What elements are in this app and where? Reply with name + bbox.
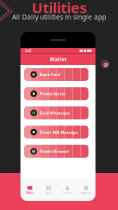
button[interactable]: Bank Card: [24, 68, 88, 81]
staticText: Utilities: [31, 0, 86, 17]
staticText: Bank Card: [40, 72, 61, 77]
staticText: Wallet: [49, 56, 66, 63]
button[interactable]: Profile: [58, 185, 77, 195]
staticText: 9:41: [24, 48, 31, 53]
staticText: Private Browser: [40, 149, 70, 154]
button[interactable]: Private Notes: [24, 87, 88, 100]
button[interactable]: Direct WA Message: [24, 126, 88, 139]
staticText: Direct WA Message: [40, 129, 78, 135]
staticText: All Daily utilities in single app: [12, 13, 106, 21]
staticText: Wallet: [26, 191, 34, 195]
staticText: Tools: [45, 191, 52, 195]
button[interactable]: Private Browser: [24, 145, 88, 158]
button[interactable]: Tools: [39, 185, 58, 195]
staticText: Profile: [62, 191, 72, 195]
button[interactable]: Wallet: [20, 185, 39, 195]
staticText: Setting: [81, 191, 91, 195]
button[interactable]: Setting: [77, 185, 96, 195]
button[interactable]: Dual Whatsapp: [24, 106, 88, 119]
staticText: Dual Whatsapp: [40, 110, 71, 115]
staticText: Private Notes: [40, 91, 66, 96]
